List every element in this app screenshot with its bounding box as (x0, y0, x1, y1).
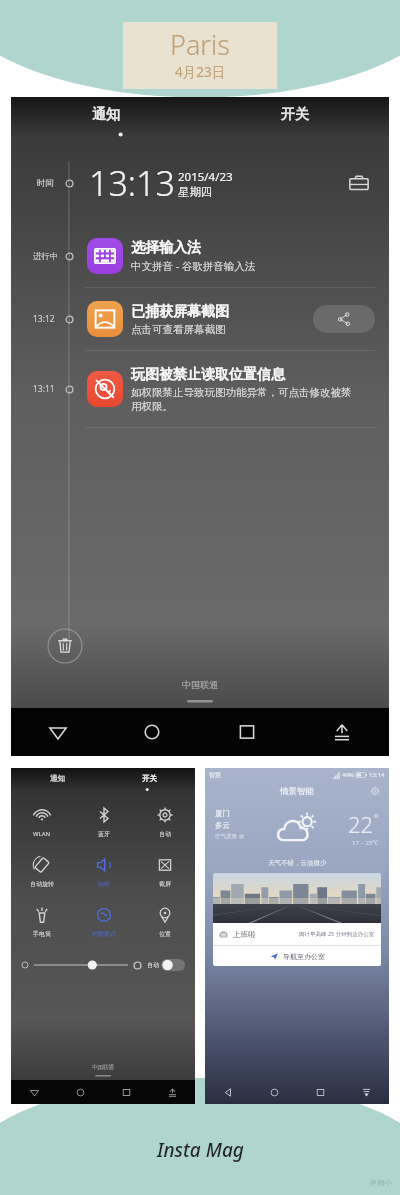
button[interactable]: 开关 (200, 97, 389, 133)
staticText: 4月23日 (175, 63, 226, 81)
staticText: 通知 (92, 106, 120, 124)
staticText: ° (374, 811, 379, 825)
staticText: 自动 (147, 961, 159, 969)
staticText: 开关 (142, 774, 157, 783)
button[interactable]: 位置 (134, 904, 195, 938)
staticText: 13:11 (33, 383, 55, 395)
button[interactable]: Back (11, 1080, 57, 1104)
button[interactable]: Back (205, 1080, 251, 1104)
staticText: 如权限禁止导致玩图功能异常，可点击修改被禁 用权限。 (131, 386, 352, 413)
staticText: 多云 (215, 821, 230, 830)
staticText: 13:12 (33, 313, 55, 325)
button[interactable]: 自动旋转 (11, 854, 73, 888)
staticText: 厦门 (215, 809, 230, 818)
staticText: 进行中 (33, 251, 59, 262)
button[interactable]: Notifications (343, 1080, 389, 1104)
button[interactable]: Recents (297, 1080, 343, 1104)
staticText: 响铃 (98, 880, 110, 888)
button[interactable]: WLAN (11, 804, 73, 838)
staticText: 位置 (159, 930, 171, 938)
button[interactable]: Back (11, 708, 105, 756)
button[interactable]: Recents (199, 708, 294, 756)
staticText: 自动 (159, 830, 171, 838)
button[interactable]: Settings (369, 785, 381, 797)
staticText: 智慧 (209, 771, 221, 779)
staticText: 导航至办公室 (283, 952, 325, 961)
button[interactable]: Recents (103, 1080, 149, 1104)
button[interactable]: Hide navigation bar (294, 708, 389, 756)
button[interactable]: Share screenshot (313, 305, 375, 333)
staticText: 自动旋转 (30, 880, 54, 888)
staticText: 17 ~ 25℃ (352, 839, 379, 847)
staticText: Paris (170, 26, 230, 63)
button[interactable]: 截屏 (134, 854, 195, 888)
button[interactable]: Hide navigation bar (149, 1080, 195, 1104)
staticText: 中国联通 (182, 679, 218, 690)
button[interactable]: 开关 (103, 768, 195, 788)
button[interactable]: Auto brightness toggle (161, 959, 185, 971)
staticText: WLAN (33, 830, 51, 838)
staticText: 蓝牙 (98, 830, 110, 838)
staticText: @ 顾小 (370, 1178, 393, 1188)
staticText: 星期四 (178, 185, 213, 199)
button[interactable]: Home (57, 1080, 103, 1104)
button[interactable]: 上班啦 (213, 923, 381, 945)
button[interactable]: 导航至办公室 (213, 946, 381, 966)
staticText: 情景智能 (280, 786, 314, 797)
button[interactable]: 蓝牙 (73, 804, 134, 838)
staticText: 时间 (37, 178, 54, 189)
staticText: 玩图被禁止读取位置信息 (131, 366, 285, 384)
button[interactable]: 手电筒 (11, 904, 73, 938)
staticText: 13:14 (369, 771, 385, 779)
button[interactable]: 13:12 (11, 288, 389, 350)
staticText: 49% (342, 771, 354, 779)
staticText: 点击可查看屏幕截图 (131, 323, 226, 336)
staticText: 开关 (281, 106, 309, 124)
button[interactable] (34, 958, 128, 972)
staticText: 上班啦 (233, 930, 256, 939)
button[interactable]: 13:11 (11, 351, 389, 427)
staticText: 13:13 (89, 160, 175, 206)
staticText: 空气质量 (215, 833, 237, 840)
button[interactable]: 护眼模式 (73, 904, 134, 938)
staticText: 中文拼音 - 谷歌拼音输入法 (131, 259, 256, 273)
staticText: 已捕获屏幕截图 (131, 303, 229, 321)
staticText: 护眼模式 (92, 930, 116, 938)
staticText: 因计早高峰 25 分钟到达办公室 (299, 930, 375, 938)
staticText: 选择输入法 (131, 239, 201, 257)
button[interactable]: 通知 (11, 768, 103, 788)
staticText: 22 (348, 809, 374, 839)
staticText: 2015/4/23 (178, 169, 233, 185)
button[interactable]: 自动 (134, 804, 195, 838)
button[interactable]: Home (251, 1080, 297, 1104)
staticText: 手电筒 (33, 930, 51, 938)
staticText: 中国联通 (11, 1064, 195, 1071)
button[interactable]: Home (105, 708, 199, 756)
staticText: Insta Mag (157, 1137, 244, 1163)
button[interactable]: Clear all notifications (47, 628, 83, 664)
button[interactable]: 响铃 (73, 854, 134, 888)
button[interactable]: 通知 (11, 97, 200, 133)
staticText: 截屏 (159, 880, 171, 888)
staticText: 通知 (50, 774, 65, 783)
button[interactable]: 进行中 (11, 225, 389, 287)
button[interactable]: Work profile (347, 171, 371, 195)
staticText: 天气不错，云淡微少 (268, 859, 327, 867)
